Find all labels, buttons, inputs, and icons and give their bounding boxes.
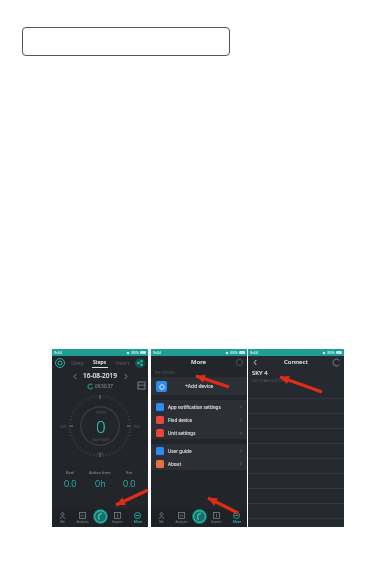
button[interactable]: Me [54,512,71,524]
button[interactable]: Refresh [333,359,340,366]
button[interactable]: +Add device [151,377,247,395]
staticText: Heart [116,360,130,367]
button[interactable]: SKY 4 [248,368,344,384]
staticText: 9:44 [250,350,258,355]
staticText: 35% [131,350,139,355]
staticText: About [168,461,182,467]
button[interactable]: Back [251,358,259,366]
staticText: 0 [96,415,106,438]
staticText: Km [126,470,133,476]
staticText: Steps [93,359,107,366]
staticText: SKY 4 [252,369,268,377]
staticText: 0 [99,394,102,399]
button[interactable]: Activity [93,509,108,524]
button[interactable]: Import [208,512,225,524]
button[interactable]: Unit settings [151,426,247,439]
staticText: Sleep [71,360,84,367]
staticText: Connect [284,358,308,366]
staticText: 50% [97,451,104,456]
staticText: Analysis [175,520,188,524]
staticText: More [233,520,241,524]
staticText: STEPS [96,410,106,415]
button[interactable]: More [129,512,146,524]
staticText: Import [211,520,222,524]
button[interactable]: Sleep [71,360,84,367]
staticText: Kcal [66,470,75,476]
staticText: Me [159,520,164,524]
staticText: +Add device [185,383,214,390]
staticText: More [134,520,142,524]
staticText: 9:44 [153,350,161,355]
button[interactable]: Info [236,359,243,366]
button[interactable]: App notification settings [151,400,247,413]
staticText: Unit settings [168,430,196,436]
button[interactable]: Share [135,358,145,368]
staticText: Active time [89,470,111,476]
staticText: 75% [133,424,140,429]
staticText: 0h [95,477,106,489]
staticText: C8:17:A8:62:0C:49 [252,378,286,383]
button[interactable]: Find device [151,413,247,426]
staticText: 25% [60,424,67,429]
button[interactable]: Import [109,512,126,524]
button[interactable]: Heart [116,360,130,367]
staticText: 0.0 [123,477,136,489]
button[interactable]: About [151,457,247,470]
staticText: Analysis [76,520,89,524]
staticText: 16-08-2019 [83,371,117,380]
button[interactable]: Next day [121,372,129,380]
button[interactable]: Analysis [74,512,91,524]
button[interactable]: Analysis [173,512,190,524]
staticText: 09:50:37 [95,383,113,389]
staticText: User guide [168,448,192,454]
staticText: 35% [327,350,335,355]
staticText: 0.0 [64,477,77,489]
staticText: 9:44 [54,350,62,355]
staticText: More [191,358,207,366]
staticText: Goal 10000 [92,438,109,442]
staticText: 35% [230,350,238,355]
button[interactable]: Steps [92,359,108,368]
button[interactable]: Activity [192,509,207,524]
button[interactable]: Target [138,382,145,389]
button[interactable]: Previous day [71,372,79,380]
button[interactable]: More [228,512,245,524]
staticText: MY DEVICE [155,370,176,375]
staticText: Import [112,520,123,524]
staticText: Me [60,520,65,524]
button[interactable]: User guide [151,444,247,457]
button[interactable]: Me [153,512,170,524]
staticText: App notification settings [168,404,221,410]
button[interactable]: Profile [55,358,65,368]
staticText: Find device [168,417,193,423]
